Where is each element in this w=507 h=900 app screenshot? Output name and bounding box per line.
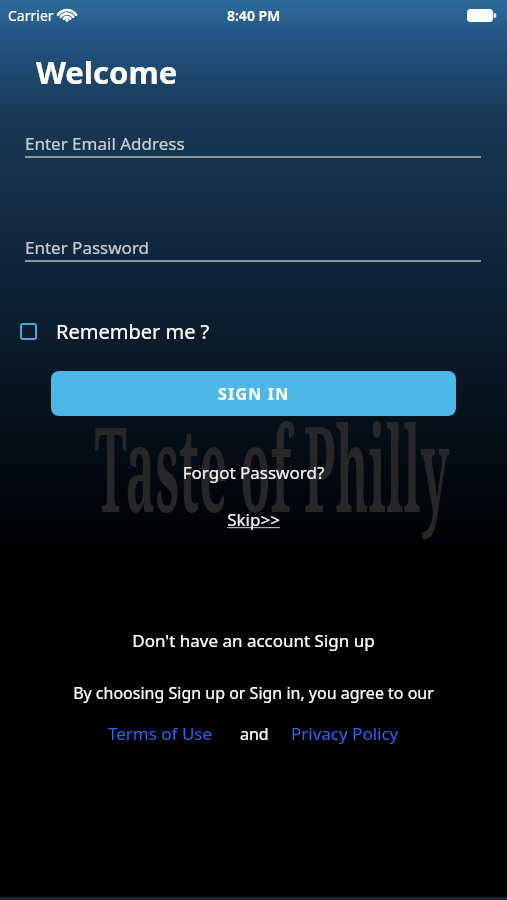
button[interactable]: Skip>>	[0, 508, 507, 531]
button[interactable]: Forgot Password?	[0, 461, 507, 484]
staticText: Taste of Philly	[0, 386, 507, 547]
button[interactable]: Don't have an account Sign up	[0, 629, 507, 652]
button[interactable]: Enter Password	[25, 229, 481, 262]
staticText: Welcome	[36, 51, 178, 93]
button[interactable]: Remember me ?	[20, 318, 210, 345]
staticText: Remember me ?	[56, 318, 210, 345]
staticText: Enter Password	[25, 236, 150, 259]
staticText: SIGN IN	[218, 383, 290, 405]
staticText: Enter Email Address	[25, 132, 185, 155]
staticText: Carrier	[8, 6, 54, 25]
button[interactable]: Enter Email Address	[25, 125, 481, 158]
staticText: and	[240, 723, 269, 745]
button[interactable]: Privacy Policy	[291, 722, 399, 745]
staticText: By choosing Sign up or Sign in, you agre…	[0, 682, 507, 704]
button[interactable]: Terms of Use	[108, 722, 213, 745]
staticText: 8:40 PM	[227, 6, 281, 25]
button[interactable]: SIGN IN	[51, 371, 456, 416]
